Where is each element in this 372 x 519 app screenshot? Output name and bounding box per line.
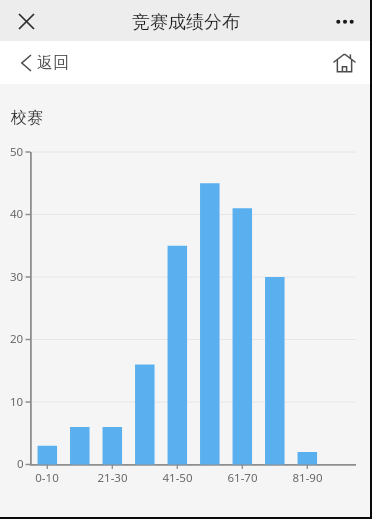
staticText: 50 bbox=[10, 144, 24, 160]
staticText: 40 bbox=[10, 206, 24, 222]
button[interactable]: 返回 bbox=[21, 41, 69, 84]
staticText: 10 bbox=[10, 394, 24, 410]
staticText: 返回 bbox=[37, 53, 69, 73]
staticText: 21-30 bbox=[97, 470, 128, 486]
staticText: 0 bbox=[17, 456, 24, 472]
staticText: 竞赛成绩分布 bbox=[132, 11, 240, 34]
button[interactable]: 校赛 bbox=[11, 108, 43, 128]
button[interactable]: More options bbox=[330, 6, 360, 36]
button[interactable]: Close bbox=[11, 6, 41, 36]
staticText: 20 bbox=[10, 331, 24, 347]
staticText: 61-70 bbox=[227, 470, 258, 486]
staticText: 30 bbox=[10, 269, 24, 285]
staticText: 校赛 bbox=[11, 108, 43, 128]
staticText: 0-10 bbox=[35, 470, 59, 486]
staticText: 41-50 bbox=[162, 470, 193, 486]
button[interactable]: Home bbox=[329, 48, 359, 78]
staticText: 81-90 bbox=[292, 470, 323, 486]
